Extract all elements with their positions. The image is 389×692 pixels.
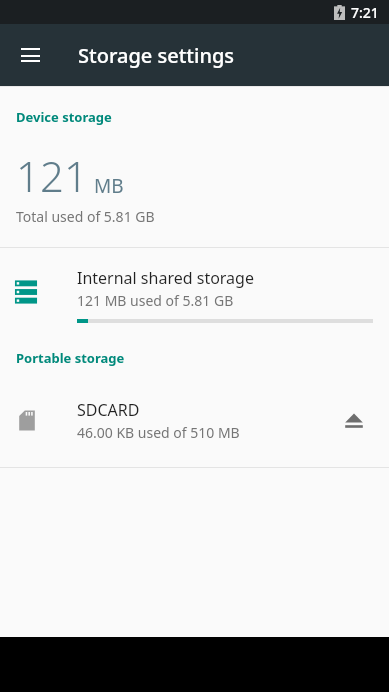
staticText: 46.00 KB used of 510 MB: [77, 423, 240, 442]
staticText: Internal shared storage: [77, 267, 254, 289]
staticText: Storage settings: [78, 42, 235, 69]
staticText: 121: [16, 147, 88, 204]
button[interactable]: Internal shared storage: [0, 248, 389, 340]
staticText: 121 MB used of 5.81 GB: [77, 291, 234, 310]
staticText: Total used of 5.81 GB: [16, 207, 155, 226]
staticText: 7:21: [351, 3, 379, 22]
staticText: SDCARD: [77, 399, 140, 421]
button[interactable]: Open navigation drawer: [10, 35, 50, 75]
staticText: Device storage: [16, 108, 112, 126]
staticText: MB: [94, 173, 124, 199]
staticText: Portable storage: [16, 349, 125, 367]
button[interactable]: Eject SD card: [337, 403, 371, 437]
button[interactable]: SDCARD: [0, 389, 389, 451]
